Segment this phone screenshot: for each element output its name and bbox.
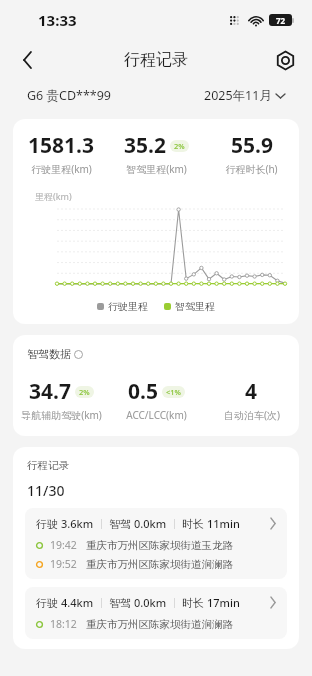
staticText: 19:42 xyxy=(50,538,77,552)
button[interactable]: 1581.3 xyxy=(13,131,109,176)
staticText: 18:12 xyxy=(50,617,77,631)
staticText: 0.5 xyxy=(128,377,158,406)
button[interactable]: 35.2 xyxy=(109,131,204,176)
staticText: 2% xyxy=(174,141,185,151)
staticText: 行驶 xyxy=(36,516,61,531)
button[interactable]: 4 xyxy=(204,377,299,422)
staticText: 行驶 xyxy=(36,595,61,610)
staticText: 19:52 xyxy=(50,557,77,571)
button[interactable]: 2025年11月 xyxy=(204,87,285,104)
staticText: 17min xyxy=(207,595,240,610)
button[interactable]: Settings xyxy=(268,43,302,77)
staticText: 里程(km) xyxy=(35,190,72,202)
staticText: 34.7 xyxy=(29,377,71,406)
staticText: 3.6km xyxy=(61,516,94,531)
button[interactable]: 34.7 xyxy=(13,377,109,422)
button[interactable]: 行驶 xyxy=(25,587,287,639)
staticText: 智驾 xyxy=(109,516,134,531)
staticText: 行驶里程 xyxy=(108,300,148,313)
staticText: <1% xyxy=(166,387,181,397)
staticText: 11min xyxy=(207,516,240,531)
staticText: 行驶里程(km) xyxy=(31,162,92,176)
button[interactable]: Back xyxy=(10,43,44,77)
staticText: 11/30 xyxy=(27,481,65,500)
staticText: 自动泊车(次) xyxy=(224,408,280,422)
staticText: 0.0km xyxy=(134,516,167,531)
button[interactable]: 55.9 xyxy=(204,131,299,176)
staticText: 时长 xyxy=(182,595,207,610)
staticText: 1581.3 xyxy=(28,131,94,160)
staticText: 重庆市万州区陈家坝街道涧澜路 xyxy=(86,618,233,631)
staticText: 2025年11月 xyxy=(204,87,272,104)
staticText: 2% xyxy=(79,387,90,397)
staticText: 智驾 xyxy=(109,595,134,610)
staticText: 重庆市万州区陈家坝街道涧澜路 xyxy=(86,558,233,571)
staticText: 72 xyxy=(276,15,286,26)
staticText: ACC/LCC(km) xyxy=(126,408,187,422)
staticText: G6 贵CD***99 xyxy=(27,87,111,104)
staticText: 4 xyxy=(245,377,258,406)
button[interactable]: 行驶 xyxy=(25,508,287,579)
staticText: 智驾里程(km) xyxy=(126,162,187,176)
staticText: 时长 xyxy=(182,516,207,531)
staticText: 行程时长(h) xyxy=(225,162,278,176)
staticText: 4.4km xyxy=(61,595,94,610)
staticText: 行程记录 xyxy=(27,459,69,472)
staticText: 0.0km xyxy=(134,595,167,610)
staticText: 重庆市万州区陈家坝街道玉龙路 xyxy=(86,539,233,552)
staticText: 智驾数据 xyxy=(27,347,71,361)
staticText: 55.9 xyxy=(231,131,273,160)
staticText: 13:33 xyxy=(38,10,77,30)
button[interactable]: 智驾数据 xyxy=(27,347,83,361)
staticText: 导航辅助驾驶(km) xyxy=(21,408,102,422)
staticText: 行程记录 xyxy=(124,50,188,70)
button[interactable]: 0.5 xyxy=(109,377,204,422)
staticText: 35.2 xyxy=(124,131,166,160)
staticText: 智驾里程 xyxy=(175,300,215,313)
